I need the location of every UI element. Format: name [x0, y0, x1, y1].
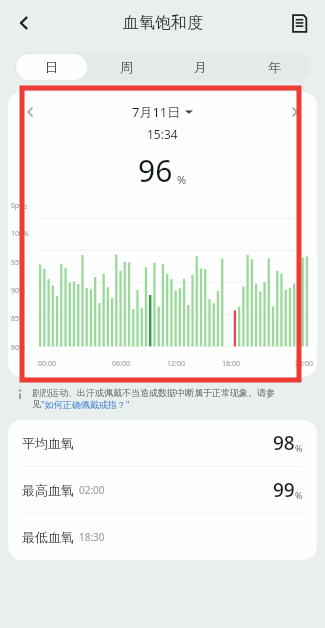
- staticText: 23:00: [295, 359, 313, 369]
- staticText: 剧烈运动、出汗或佩戴不当造成数据中断属于正常现象。请参: [32, 387, 275, 398]
- staticText: 年: [268, 59, 281, 75]
- staticText: 96: [138, 150, 173, 191]
- staticText: 00:00: [38, 359, 56, 369]
- staticText: 平均血氧: [22, 435, 74, 451]
- button[interactable]: 月: [165, 54, 235, 80]
- staticText: %: [177, 172, 187, 187]
- staticText: SpO₂: [11, 201, 28, 211]
- staticText: 7月11日: [132, 103, 181, 121]
- staticText: 最低血氧: [22, 529, 74, 545]
- staticText: 见: [32, 398, 41, 409]
- staticText: 血氧饱和度: [123, 13, 203, 33]
- staticText: 月: [194, 59, 207, 75]
- button[interactable]: 周: [91, 54, 161, 80]
- button[interactable]: "如何正确佩戴戒指？": [41, 398, 130, 410]
- staticText: 95%: [11, 258, 25, 268]
- staticText: 85%: [11, 314, 25, 324]
- button[interactable]: 平均血氧: [8, 420, 317, 466]
- staticText: 18:00: [222, 359, 240, 369]
- button[interactable]: 日: [16, 54, 87, 80]
- staticText: 12:00: [167, 359, 185, 369]
- button[interactable]: Previous day: [18, 100, 42, 124]
- staticText: %: [295, 489, 303, 501]
- button[interactable]: Records: [281, 5, 317, 41]
- button[interactable]: 年: [239, 54, 309, 80]
- button[interactable]: 最低血氧: [8, 514, 317, 560]
- staticText: 15:34: [147, 126, 178, 142]
- staticText: 99: [273, 477, 295, 503]
- staticText: 90%: [11, 286, 25, 296]
- staticText: 周: [120, 59, 133, 75]
- button[interactable]: Back: [6, 5, 42, 41]
- staticText: 日: [45, 59, 58, 75]
- staticText: 06:00: [112, 359, 130, 369]
- staticText: %: [295, 442, 303, 454]
- staticText: 98: [273, 430, 295, 456]
- staticText: 最高血氧: [22, 482, 74, 498]
- button[interactable]: Next day: [283, 100, 307, 124]
- staticText: 100%: [11, 229, 29, 239]
- staticText: 80%: [11, 343, 25, 353]
- staticText: 02:00: [79, 483, 105, 497]
- staticText: 18:30: [79, 530, 105, 544]
- button[interactable]: 最高血氧: [8, 467, 317, 513]
